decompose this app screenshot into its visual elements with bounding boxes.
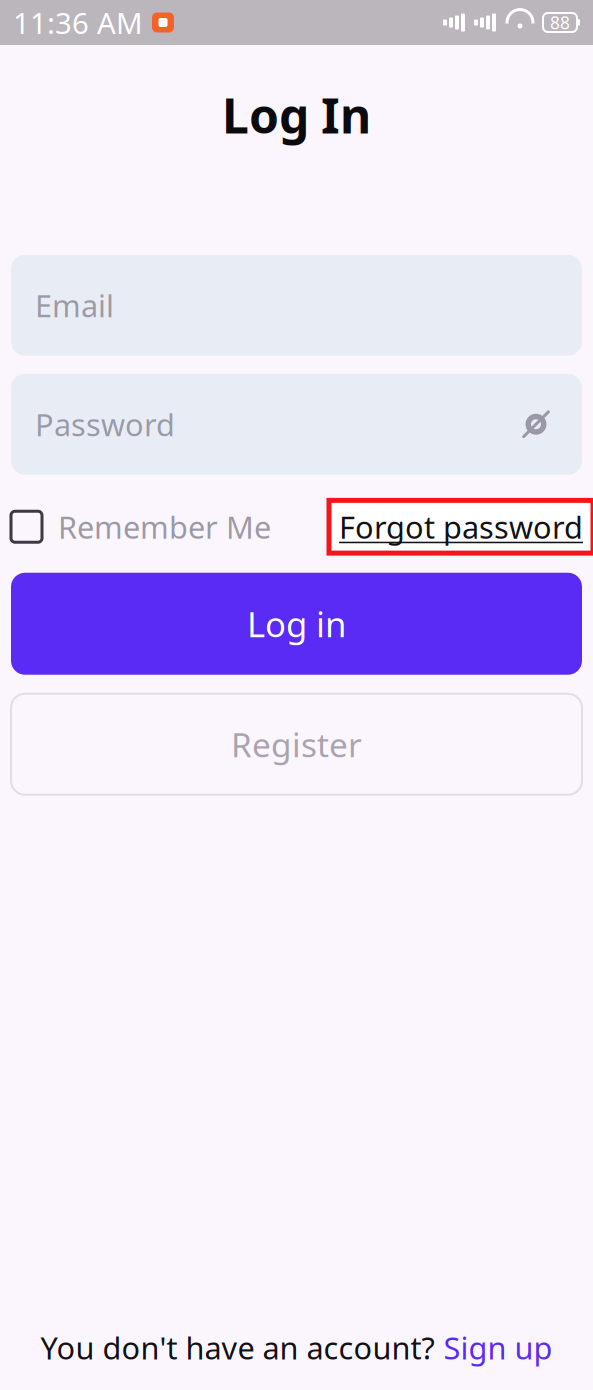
staticText: Remember Me: [58, 506, 271, 547]
staticText: You don't have an account?: [40, 1327, 434, 1368]
button[interactable]: Log in: [11, 573, 582, 675]
staticText: Forgot password: [339, 506, 583, 547]
staticText: 88: [550, 11, 570, 34]
button[interactable]: Forgot password: [329, 500, 593, 553]
button[interactable]: Remember Me: [11, 506, 271, 547]
staticText: Sign up: [443, 1327, 552, 1368]
staticText: Email: [35, 285, 114, 326]
staticText: Password: [35, 404, 175, 445]
button[interactable]: Show password: [514, 402, 558, 446]
button[interactable]: Register: [11, 694, 582, 795]
staticText: 11:36 AM: [13, 3, 143, 42]
button[interactable]: You don't have an account?: [40, 1327, 552, 1368]
staticText: Log In: [222, 83, 371, 147]
staticText: Log in: [247, 601, 346, 647]
staticText: Register: [231, 722, 362, 766]
